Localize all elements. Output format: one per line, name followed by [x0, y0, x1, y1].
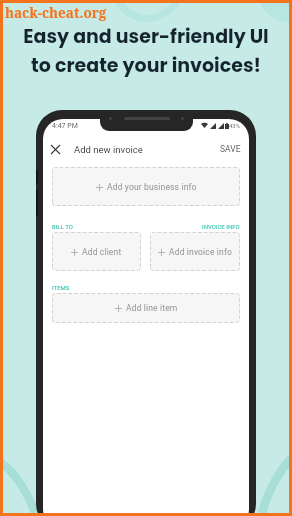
button[interactable]: Add your business info	[52, 167, 240, 206]
staticText: 43%	[229, 122, 241, 129]
button[interactable]: Add client	[52, 232, 141, 271]
button[interactable]: Add invoice info	[150, 232, 240, 271]
staticText: Add invoice info	[169, 247, 232, 257]
button[interactable]: Close	[43, 139, 68, 159]
staticText: to create your invoices!	[31, 52, 261, 79]
staticText: 4:47 PM	[52, 122, 78, 130]
button[interactable]: Add line item	[52, 293, 240, 323]
staticText: Add client	[82, 247, 122, 257]
staticText: hack-cheat.org	[5, 4, 107, 22]
staticText: Add your business info	[107, 182, 197, 192]
staticText: Add line item	[126, 303, 178, 313]
staticText: Add new invoice	[74, 144, 143, 155]
staticText: ITEMS	[52, 284, 70, 291]
staticText: Easy and user-friendly UI	[23, 23, 269, 50]
staticText: BILL TO	[52, 223, 73, 230]
staticText: INVOICE INFO	[202, 223, 240, 230]
staticText: SAVE	[220, 144, 241, 154]
button[interactable]: SAVE	[212, 140, 249, 158]
